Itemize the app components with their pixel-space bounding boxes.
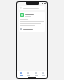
button[interactable]: Profile xyxy=(40,71,46,76)
button[interactable]: Explore xyxy=(25,71,31,76)
button[interactable]: Activity xyxy=(33,71,39,76)
button[interactable]: App icon xyxy=(19,12,45,32)
button[interactable]: Home xyxy=(18,71,24,76)
button[interactable] xyxy=(19,6,45,10)
other: App icon xyxy=(20,13,24,17)
